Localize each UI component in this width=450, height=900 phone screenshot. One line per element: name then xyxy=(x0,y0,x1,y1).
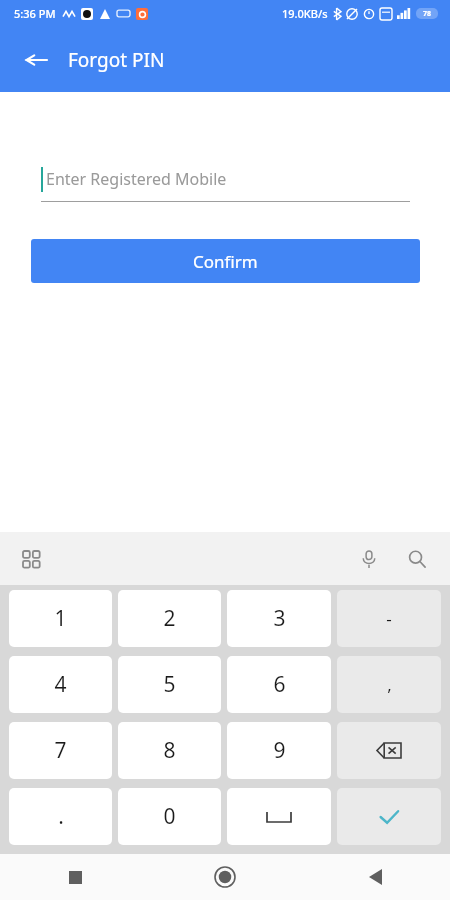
staticText: 2 xyxy=(163,604,176,633)
staticText: . xyxy=(58,802,64,831)
button[interactable]: Back xyxy=(16,40,56,80)
button[interactable]: Back xyxy=(300,854,450,900)
button[interactable]: 8 xyxy=(118,722,221,779)
button[interactable]: Home xyxy=(150,854,300,900)
staticText: 5 xyxy=(163,670,176,699)
staticText: Confirm xyxy=(193,250,258,273)
button[interactable]: , xyxy=(337,656,441,713)
staticText: 4 xyxy=(54,670,67,699)
staticText: , xyxy=(387,673,392,696)
button[interactable]: 7 xyxy=(9,722,112,779)
button[interactable]: Enter xyxy=(337,788,441,845)
button[interactable]: - xyxy=(337,590,441,647)
button[interactable]: Space xyxy=(227,788,331,845)
button[interactable]: 0 xyxy=(118,788,221,845)
button[interactable]: Enter Registered Mobile xyxy=(41,156,410,202)
staticText: 9 xyxy=(273,736,286,765)
staticText: 78 xyxy=(423,9,432,19)
staticText: Forgot PIN xyxy=(68,47,165,73)
staticText: 8 xyxy=(163,736,176,765)
button[interactable]: Voice input xyxy=(352,542,386,576)
button[interactable]: 6 xyxy=(227,656,331,713)
button[interactable]: 2 xyxy=(118,590,221,647)
button[interactable]: 4 xyxy=(9,656,112,713)
staticText: 7 xyxy=(54,736,67,765)
staticText: 1 xyxy=(54,604,67,633)
staticText: 19.0KB/s xyxy=(282,6,328,21)
button[interactable]: 1 xyxy=(9,590,112,647)
button[interactable]: . xyxy=(9,788,112,845)
staticText: Enter Registered Mobile xyxy=(46,168,227,190)
button[interactable]: Recent apps xyxy=(0,854,150,900)
staticText: 3 xyxy=(273,604,286,633)
button[interactable]: Backspace xyxy=(337,722,441,779)
button[interactable]: 9 xyxy=(227,722,331,779)
staticText: 0 xyxy=(163,802,176,831)
staticText: 5:36 PM xyxy=(14,6,56,21)
staticText: 6 xyxy=(273,670,286,699)
button[interactable]: Search xyxy=(400,542,434,576)
button[interactable]: Confirm xyxy=(31,239,420,283)
button[interactable]: 5 xyxy=(118,656,221,713)
button[interactable]: 3 xyxy=(227,590,331,647)
button[interactable]: Keyboard options xyxy=(14,542,48,576)
staticText: - xyxy=(386,607,392,630)
